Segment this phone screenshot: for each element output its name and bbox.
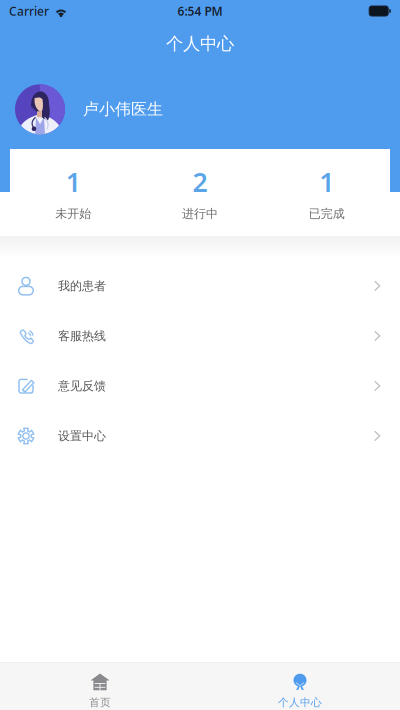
staticText: 意见反馈	[58, 379, 106, 393]
staticText: 首页	[89, 696, 111, 709]
button[interactable]: 意见反馈	[0, 361, 400, 411]
staticText: 个人中心	[278, 696, 322, 709]
button[interactable]: 个人中心	[200, 663, 400, 710]
staticText: 进行中	[182, 206, 218, 221]
staticText: 客服热线	[58, 329, 106, 343]
button[interactable]: 我的患者	[0, 261, 400, 311]
staticText: 6:54 PM	[177, 3, 222, 19]
staticText: 已完成	[309, 206, 345, 221]
staticText: 1	[66, 164, 81, 199]
staticText: 我的患者	[58, 279, 106, 293]
button[interactable]: 客服热线	[0, 311, 400, 361]
staticText: 设置中心	[58, 429, 106, 443]
button[interactable]: 设置中心	[0, 411, 400, 461]
staticText: 2	[192, 164, 207, 199]
staticText: 1	[319, 164, 334, 199]
button[interactable]: 首页	[0, 663, 200, 710]
staticText: 个人中心	[166, 33, 234, 54]
staticText: 未开始	[55, 206, 91, 221]
staticText: 卢小伟医生	[83, 99, 163, 119]
staticText: Carrier	[9, 3, 49, 19]
